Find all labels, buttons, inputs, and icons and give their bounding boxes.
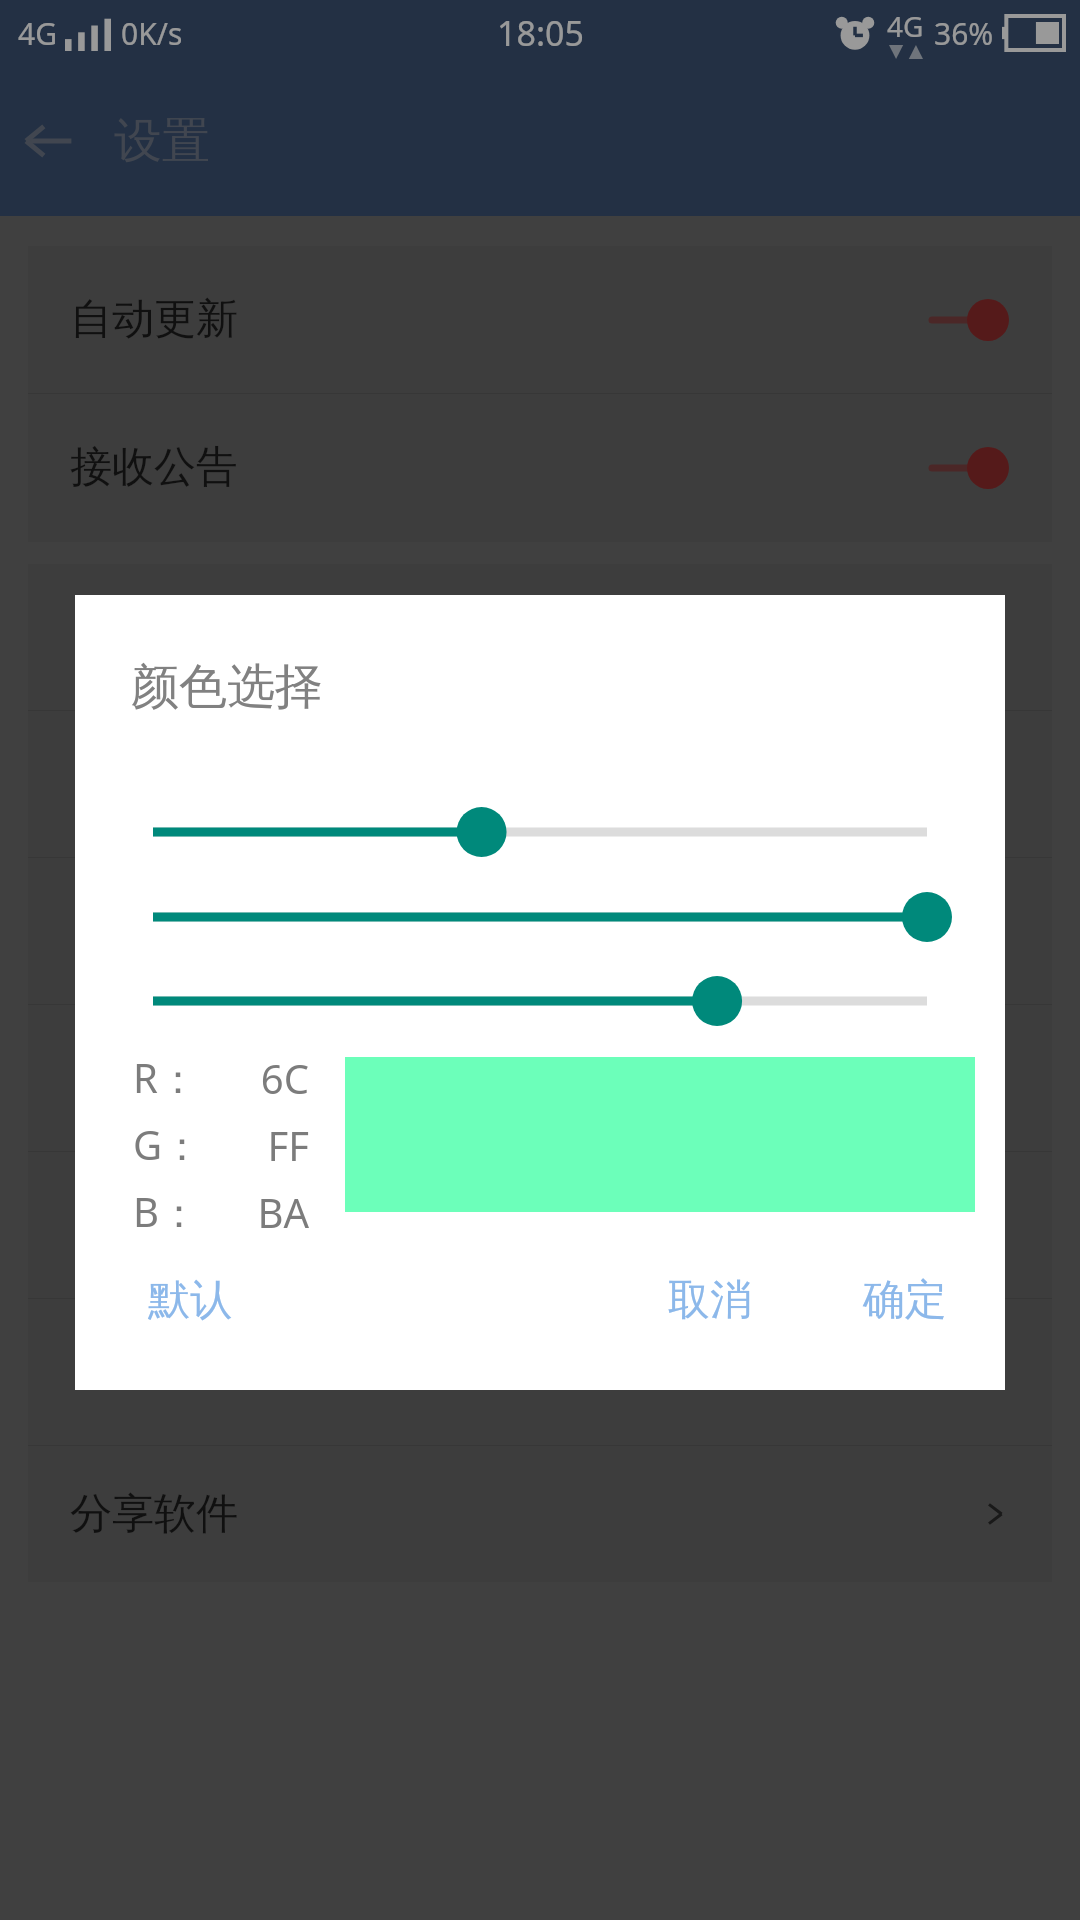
staticText: 18:05 [497, 10, 584, 56]
staticText: 设置 [114, 111, 210, 171]
button[interactable]: Back [0, 93, 96, 189]
staticText: 36% [934, 13, 994, 54]
staticText: B： [133, 1184, 199, 1239]
button[interactable]: Color channel slider [115, 971, 965, 1031]
staticText: 4G [887, 7, 924, 45]
staticText: BA [219, 1185, 309, 1239]
button[interactable]: 默认 [115, 1255, 265, 1345]
staticText: 颜色选择 [131, 657, 323, 717]
staticText: 默认 [148, 1274, 232, 1327]
staticText: G： [133, 1117, 203, 1172]
button[interactable]: Color channel slider [115, 802, 965, 862]
button[interactable]: Color channel slider [115, 887, 965, 947]
button[interactable]: 接收公告 [28, 394, 1052, 541]
staticText: 确定 [863, 1274, 947, 1327]
staticText: 接收公告 [70, 441, 238, 494]
button[interactable]: 自动更新 [28, 246, 1052, 393]
button[interactable] [926, 296, 1010, 344]
staticText: 6C [219, 1051, 309, 1105]
staticText: 0K/s [121, 13, 183, 54]
staticText: FF [219, 1118, 309, 1172]
button[interactable]: 分享软件 [28, 1446, 1052, 1582]
button[interactable]: 确定 [830, 1255, 980, 1345]
staticText: 自动更新 [70, 293, 238, 346]
staticText: 4G [18, 13, 57, 54]
button[interactable]: 取消 [635, 1255, 785, 1345]
staticText: R： [133, 1050, 198, 1105]
staticText: 取消 [668, 1274, 752, 1327]
staticText: 分享软件 [70, 1488, 238, 1541]
button[interactable] [926, 444, 1010, 492]
